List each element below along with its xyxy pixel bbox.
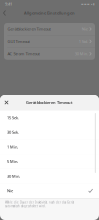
- button[interactable]: 1 Min.: [0, 140, 99, 154]
- staticText: GUI Timeout: [7, 39, 29, 44]
- button[interactable]: Nie: [0, 183, 99, 198]
- button[interactable]: Close: [0, 95, 13, 110]
- staticText: 9:41: [5, 1, 12, 7]
- button[interactable]: 5 Min.: [0, 154, 99, 169]
- button[interactable]: 30 Min.: [0, 169, 99, 183]
- staticText: 30 Sek.: [7, 130, 19, 135]
- staticText: 30 Min.: [7, 173, 20, 179]
- staticText: ▬▬▬ ▴ ▮: [81, 2, 94, 5]
- staticText: Nie: [7, 188, 13, 193]
- staticText: Allgemeine Einstellungen: [24, 10, 75, 16]
- button[interactable]: GUI Timeout: [4, 35, 95, 47]
- button[interactable]: 15 Sek.: [0, 110, 99, 125]
- staticText: Gerätblockieren Timeout: [7, 26, 50, 32]
- staticText: 1 Min.: [7, 144, 18, 149]
- button[interactable]: 30 Sek.: [0, 125, 99, 140]
- button[interactable]: Gerätblockieren Timeout: [4, 23, 95, 35]
- staticText: Gerätblockieren Timeout: [26, 100, 73, 105]
- button[interactable]: Back: [0, 8, 9, 18]
- staticText: Wähle die Dauer der Inaktivität, nach de…: [5, 201, 74, 204]
- button[interactable]: AC Strom Timeout: [4, 48, 95, 60]
- staticText: 15 Sek.: [7, 115, 19, 120]
- staticText: 30 Min.: [75, 51, 88, 56]
- staticText: 1 Std.: [79, 39, 88, 44]
- staticText: Nie: [82, 26, 88, 32]
- staticText: AC Strom Timeout: [7, 51, 39, 56]
- staticText: automatisch abgeschaltet wird.: [5, 204, 46, 208]
- staticText: 5 Min.: [7, 159, 18, 164]
